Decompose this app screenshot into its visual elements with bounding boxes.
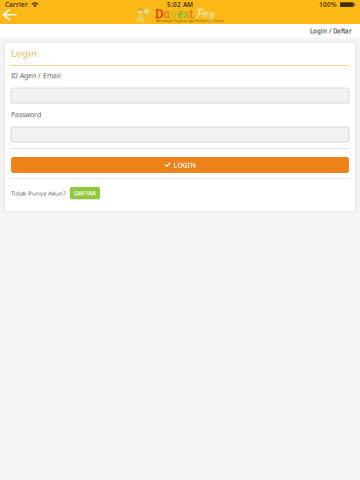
staticText: DAFTAR <box>74 189 96 197</box>
staticText: Login / Daftar <box>310 27 352 35</box>
staticText: e <box>177 4 183 22</box>
staticText: t <box>189 4 194 22</box>
staticText: D <box>155 4 163 22</box>
staticText: a <box>163 4 170 22</box>
staticText: Pay <box>195 4 214 22</box>
staticText: Tidak Punya Akun? <box>11 189 66 197</box>
staticText: ID Agen / Email <box>11 71 61 80</box>
staticText: LOGIN <box>173 160 195 170</box>
staticText: Carrier <box>5 0 28 9</box>
staticText: 5:02 AM <box>167 0 193 9</box>
staticText: s <box>183 4 189 22</box>
button[interactable]: Back <box>0 7 26 23</box>
staticText: Login <box>11 46 37 60</box>
staticText: 100% <box>319 0 337 9</box>
staticText: Password <box>11 110 41 119</box>
button[interactable]: LOGIN <box>4 157 356 173</box>
staticText: Membayar Tagihan dan Pembelian Online <box>156 19 224 23</box>
button[interactable]: Login / Daftar <box>302 24 360 38</box>
button[interactable]: DAFTAR <box>70 187 100 199</box>
staticText: v <box>170 4 177 22</box>
